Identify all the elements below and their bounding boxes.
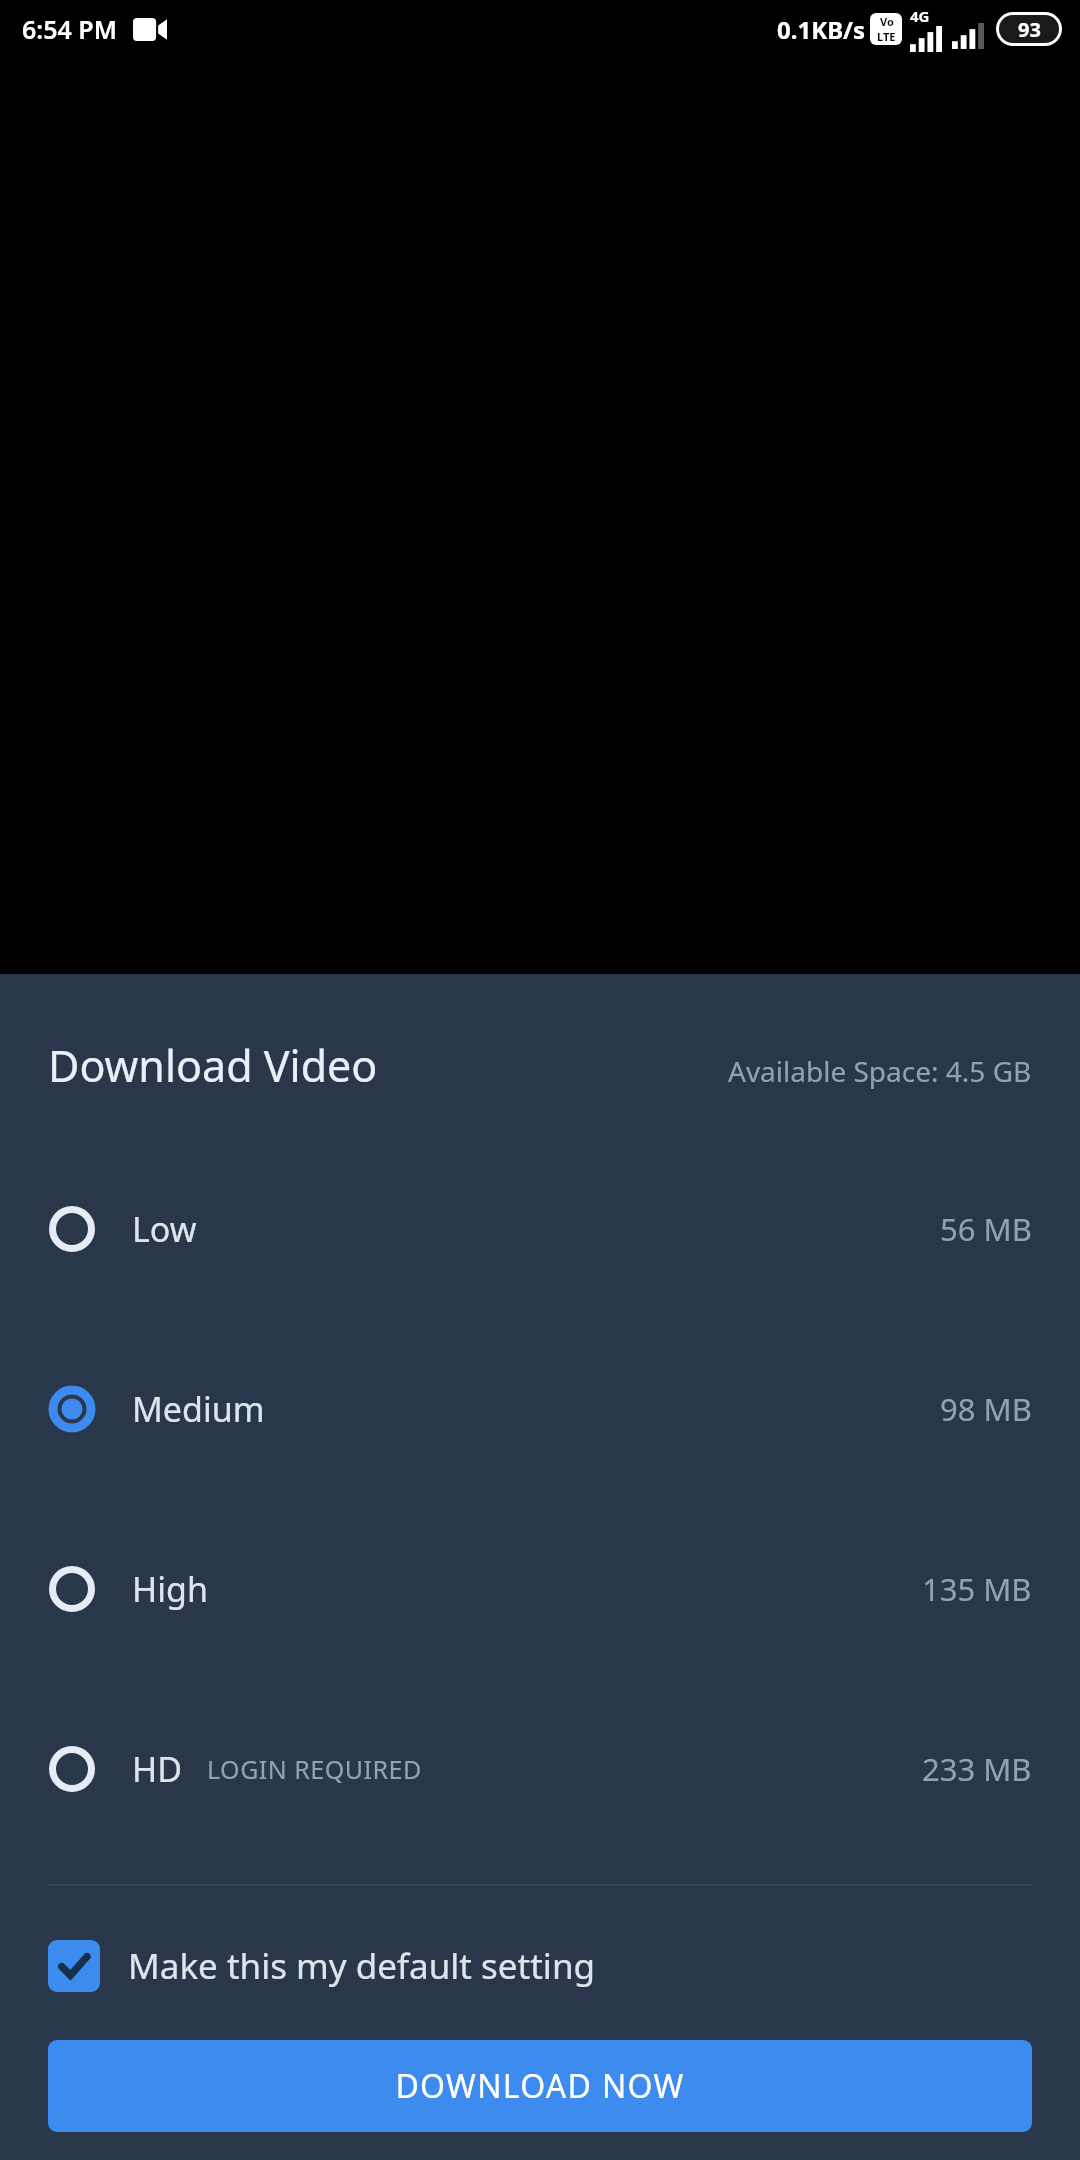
staticText: 233 MB bbox=[922, 1748, 1032, 1790]
staticText: Download Video bbox=[48, 1036, 378, 1095]
button[interactable]: HD bbox=[0, 1679, 1080, 1859]
button[interactable]: High bbox=[0, 1499, 1080, 1679]
staticText: High bbox=[132, 1566, 208, 1612]
staticText: LOGIN REQUIRED bbox=[207, 1752, 422, 1786]
staticText: Medium bbox=[132, 1386, 265, 1432]
staticText: LTE bbox=[877, 29, 896, 44]
staticText: Make this my default setting bbox=[128, 1942, 596, 1990]
button[interactable]: Low bbox=[0, 1139, 1080, 1319]
staticText: Low bbox=[132, 1206, 197, 1252]
button[interactable]: Medium bbox=[0, 1319, 1080, 1499]
button[interactable]: Make this my default setting bbox=[0, 1934, 1080, 1998]
staticText: 98 MB bbox=[940, 1388, 1032, 1430]
button[interactable]: DOWNLOAD NOW bbox=[48, 2040, 1032, 2132]
staticText: Vo bbox=[880, 14, 894, 29]
staticText: DOWNLOAD NOW bbox=[395, 2064, 685, 2108]
staticText: 93 bbox=[1018, 16, 1041, 43]
staticText: 6:54 PM bbox=[22, 12, 117, 46]
staticText: Available Space: 4.5 GB bbox=[728, 1052, 1032, 1090]
staticText: 56 MB bbox=[940, 1208, 1032, 1250]
staticText: 135 MB bbox=[922, 1568, 1032, 1610]
staticText: 4G bbox=[910, 6, 930, 26]
staticText: HD bbox=[132, 1746, 183, 1792]
staticText: 0.1KB/s bbox=[777, 13, 866, 46]
